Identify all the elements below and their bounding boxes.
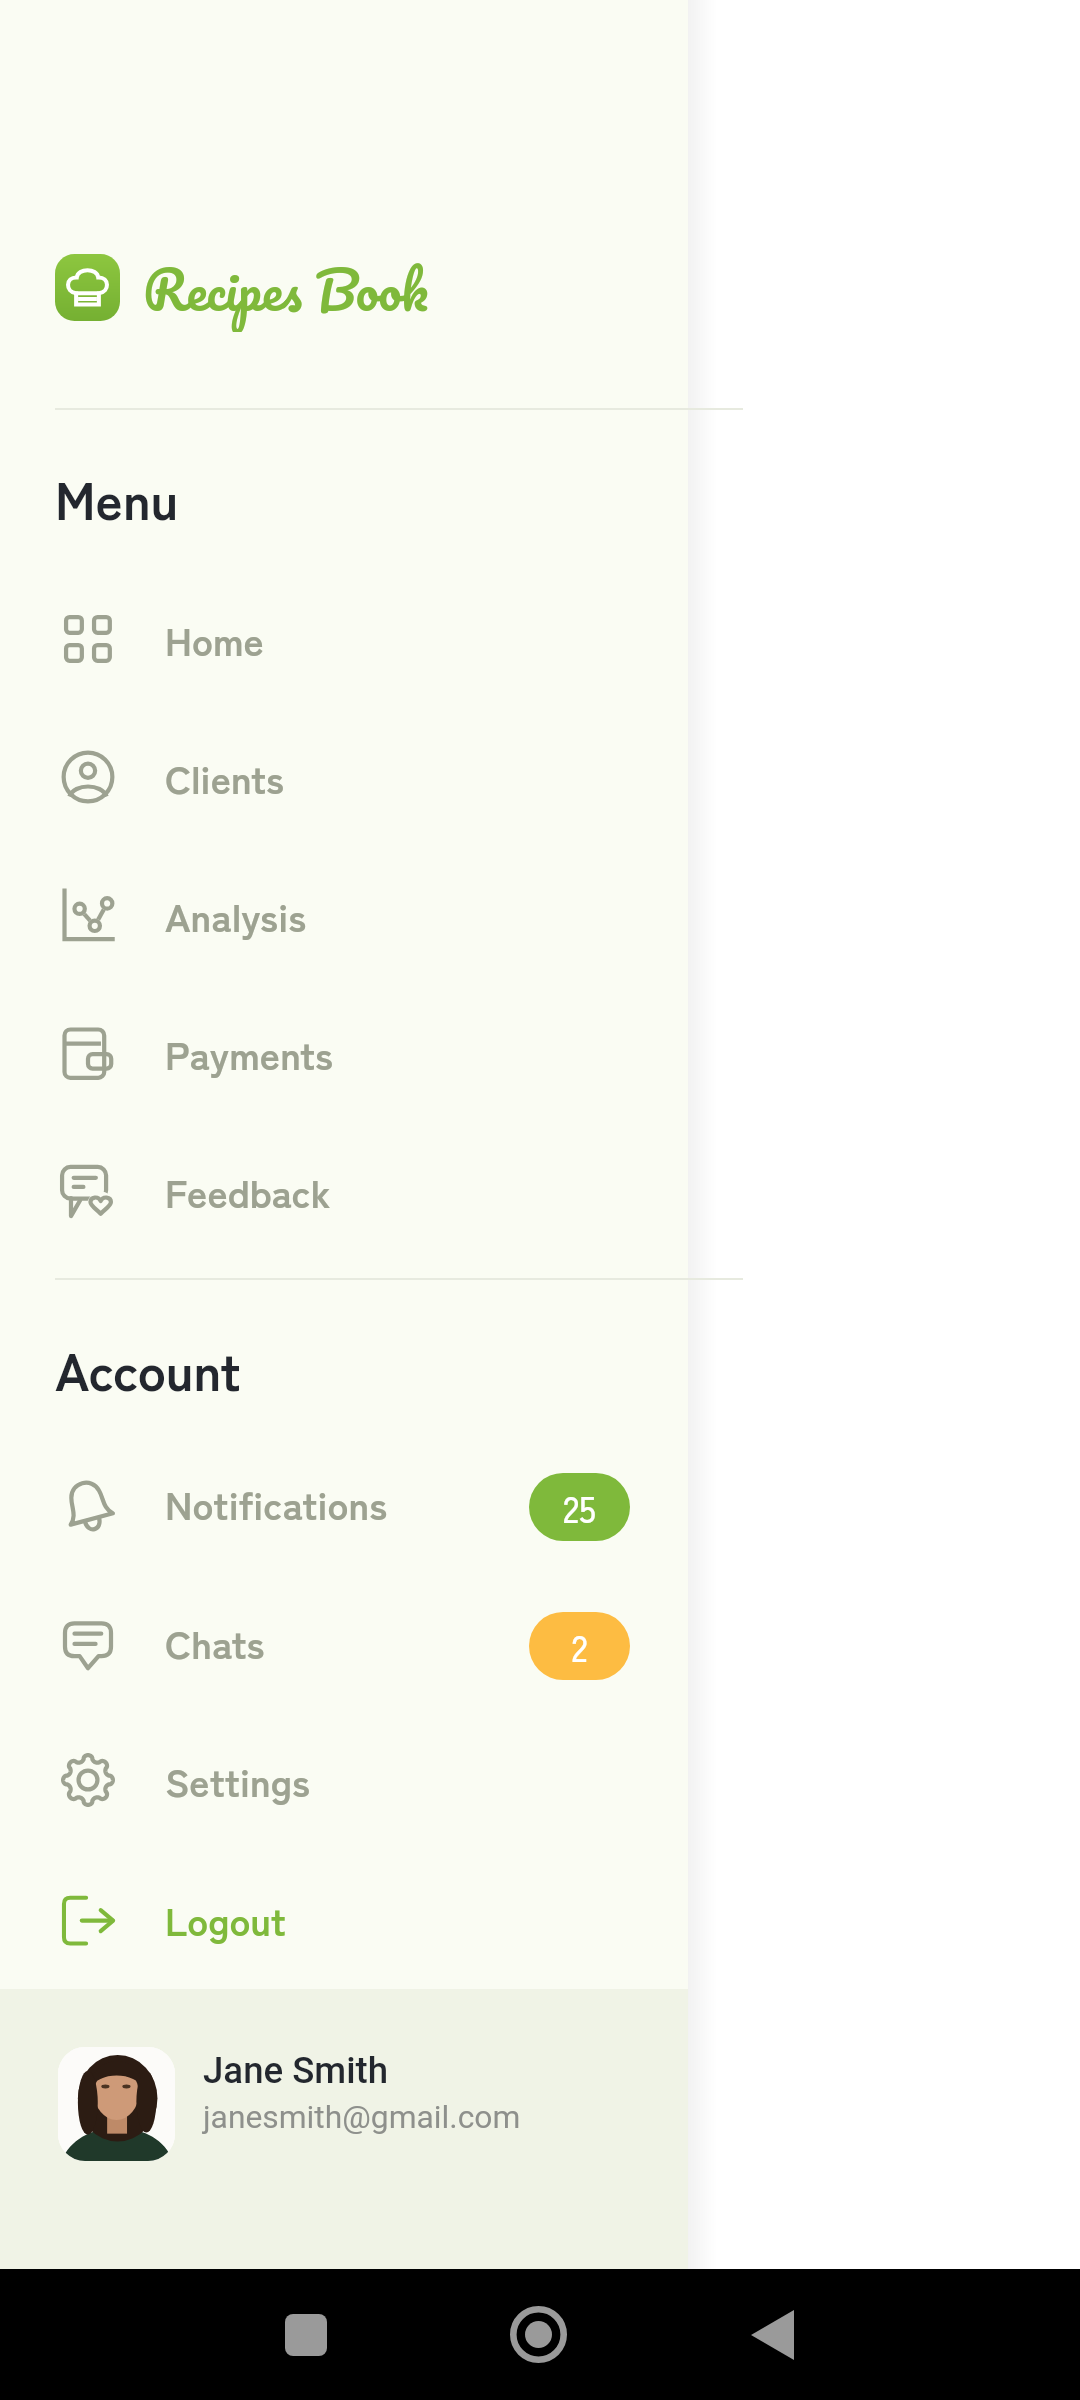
staticText: Feedback [165, 1163, 331, 1219]
staticText: Home [165, 611, 264, 667]
button[interactable]: Recipes Book [0, 244, 688, 331]
staticText: Recipes Book [143, 245, 428, 332]
button[interactable]: Analysis [0, 867, 688, 963]
button[interactable]: Payments [0, 1005, 688, 1101]
staticText: Settings [165, 1752, 311, 1808]
button[interactable]: Clients [0, 729, 688, 825]
staticText: Notifications [165, 1475, 388, 1531]
button[interactable]: Home [0, 591, 688, 687]
staticText: 25 [563, 1481, 596, 1533]
staticText: Account [55, 1330, 241, 1406]
button[interactable]: Chats [0, 1594, 688, 1690]
button[interactable]: Notifications [0, 1455, 688, 1551]
button[interactable]: Feedback [0, 1143, 688, 1239]
staticText: Payments [165, 1025, 334, 1081]
button[interactable]: Back [730, 2269, 814, 2400]
button[interactable]: Logout [0, 1871, 688, 1967]
button[interactable]: Home [496, 2269, 580, 2400]
staticText: janesmith@gmail.com [203, 2098, 521, 2135]
staticText: Jane Smith [203, 2049, 389, 2092]
staticText: Logout [165, 1891, 286, 1947]
staticText: Clients [165, 749, 284, 805]
staticText: Analysis [165, 887, 307, 943]
staticText: Chats [165, 1614, 265, 1670]
staticText: Menu [55, 459, 179, 535]
button[interactable]: Settings [0, 1732, 688, 1828]
button[interactable]: Recents [264, 2269, 348, 2400]
staticText: 2 [571, 1620, 588, 1672]
button[interactable]: Jane Smith [0, 1989, 688, 2269]
